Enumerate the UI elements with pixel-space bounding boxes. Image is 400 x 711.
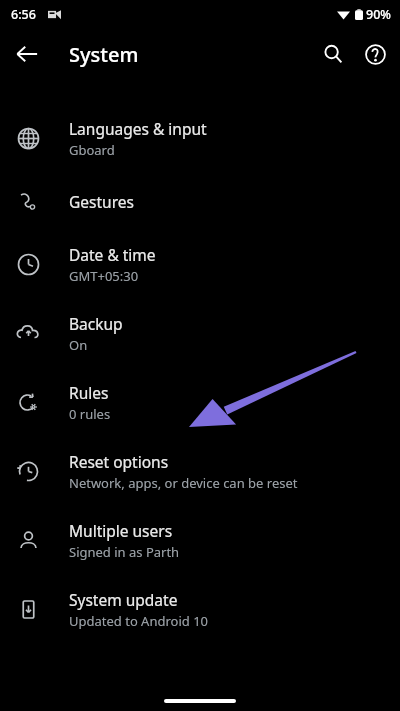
staticText: 6:56 — [11, 6, 36, 23]
button[interactable]: Gestures — [0, 173, 400, 230]
button[interactable]: Languages & input — [0, 104, 400, 173]
button[interactable]: Search — [313, 34, 353, 74]
staticText: Gestures — [69, 191, 134, 212]
button[interactable]: Multiple users — [0, 506, 400, 575]
staticText: Signed in as Parth — [69, 543, 180, 561]
staticText: Reset options — [69, 451, 169, 472]
staticText: On — [69, 336, 88, 354]
staticText: Gboard — [69, 141, 115, 159]
button[interactable]: Back — [7, 34, 47, 74]
staticText: Backup — [69, 313, 123, 334]
button[interactable]: Date & time — [0, 230, 400, 299]
staticText: Date & time — [69, 244, 156, 265]
staticText: Multiple users — [69, 520, 173, 541]
staticText: System — [69, 41, 139, 68]
staticText: Languages & input — [69, 118, 207, 139]
button[interactable]: System update — [0, 575, 400, 644]
staticText: GMT+05:30 — [69, 267, 139, 285]
staticText: 90% — [366, 6, 391, 23]
button[interactable]: Help — [355, 34, 395, 74]
staticText: Rules — [69, 382, 109, 403]
button[interactable]: Rules — [0, 368, 400, 437]
staticText: 0 rules — [69, 405, 111, 423]
button[interactable]: Backup — [0, 299, 400, 368]
button[interactable]: Reset options — [0, 437, 400, 506]
staticText: Network, apps, or device can be reset — [69, 474, 298, 492]
staticText: Updated to Android 10 — [69, 612, 209, 630]
staticText: System update — [69, 589, 178, 610]
